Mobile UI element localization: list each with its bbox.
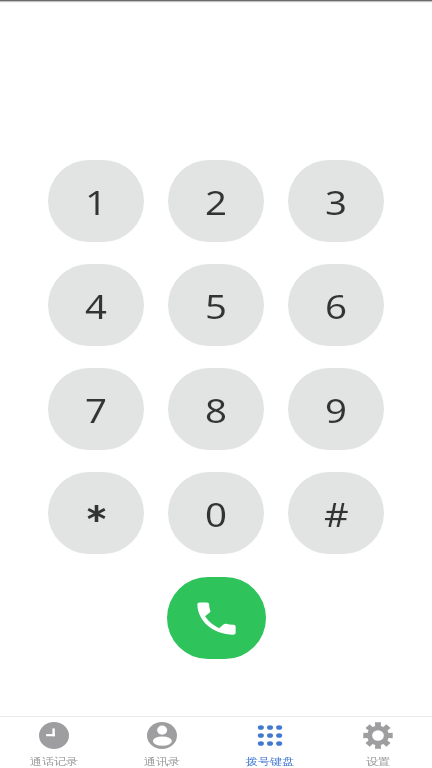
staticText: 7 (85, 389, 108, 433)
button[interactable]: 7 (48, 368, 144, 450)
button[interactable]: 4 (48, 264, 144, 346)
button[interactable]: # (288, 472, 384, 554)
staticText: 4 (85, 285, 108, 329)
staticText: 设置 (366, 755, 390, 768)
button[interactable]: 1 (48, 160, 144, 242)
staticText: # (324, 493, 349, 537)
button[interactable]: 8 (168, 368, 264, 450)
button[interactable]: 3 (288, 160, 384, 242)
button[interactable]: 6 (288, 264, 384, 346)
button[interactable]: Call history (0, 717, 108, 768)
staticText: 拨号键盘 (246, 755, 294, 768)
staticText: 1 (85, 181, 108, 225)
staticText: 3 (325, 181, 348, 225)
button[interactable]: Settings (324, 717, 432, 768)
staticText: 通话记录 (30, 755, 78, 768)
staticText: 5 (205, 285, 228, 329)
button[interactable]: Contacts (108, 717, 216, 768)
button[interactable]: 2 (168, 160, 264, 242)
button[interactable]: Call (167, 577, 266, 659)
staticText: 9 (325, 389, 348, 433)
button[interactable]: 5 (168, 264, 264, 346)
staticText: 8 (205, 389, 228, 433)
staticText: 通讯录 (144, 755, 180, 768)
staticText: 0 (205, 493, 228, 537)
button[interactable]: Dialpad (216, 717, 324, 768)
staticText: 6 (325, 285, 348, 329)
button[interactable]: 0 (168, 472, 264, 554)
button[interactable] (48, 472, 144, 554)
staticText: 2 (205, 181, 228, 225)
button[interactable]: 9 (288, 368, 384, 450)
